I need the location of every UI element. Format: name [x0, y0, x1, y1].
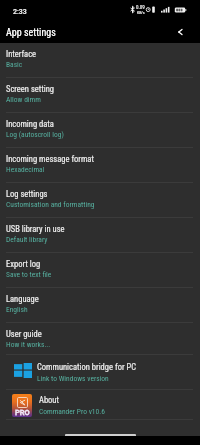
button[interactable]: Log settings [0, 183, 200, 218]
button[interactable]: Language [0, 288, 200, 323]
staticText: PRO [15, 408, 30, 417]
staticText: Hexadecimal [6, 165, 45, 174]
staticText: Language [6, 294, 39, 304]
staticText: Log (autoscroll log) [6, 130, 64, 139]
staticText: 0.09 [136, 4, 145, 10]
staticText: Export log [6, 259, 41, 269]
staticText: Link to Windows version [37, 374, 109, 383]
button[interactable]: Back [168, 19, 192, 43]
button[interactable]: USB library in use [0, 218, 200, 253]
button[interactable]: Screen setting [0, 78, 200, 113]
button[interactable]: PRO [0, 390, 200, 420]
button[interactable]: Incoming data [0, 113, 200, 148]
staticText: Incoming data [6, 119, 54, 129]
staticText: App settings [6, 27, 56, 39]
button[interactable]: Export log [0, 253, 200, 288]
staticText: Incoming message format [6, 154, 94, 164]
button[interactable]: Interface [0, 43, 200, 78]
staticText: Basic [6, 60, 23, 69]
staticText: About [39, 395, 59, 405]
staticText: Customisation and formatting [6, 200, 95, 209]
staticText: 2:33 [13, 8, 27, 16]
button[interactable]: User guide [0, 323, 200, 355]
staticText: KB/s [137, 10, 145, 15]
staticText: Interface [6, 49, 37, 59]
button[interactable]: Communication bridge for PC [0, 355, 200, 390]
staticText: Log settings [6, 189, 48, 199]
staticText: Communication bridge for PC [37, 362, 136, 372]
staticText: Default library [6, 235, 48, 244]
staticText: Allow dimm [6, 95, 41, 104]
staticText: How it works... [6, 340, 51, 349]
staticText: English [6, 305, 28, 314]
staticText: Commander Pro v10.6 [39, 407, 105, 416]
staticText: Save to text file [6, 270, 52, 279]
staticText: USB library in use [6, 224, 65, 234]
staticText: User guide [6, 329, 42, 339]
button[interactable]: Incoming message format [0, 148, 200, 183]
staticText: Screen setting [6, 84, 55, 94]
